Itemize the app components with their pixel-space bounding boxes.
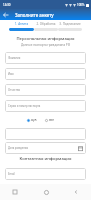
staticText: Email [8,172,15,176]
staticText: Имя [8,72,14,76]
button[interactable]: жен [44,118,56,122]
staticText: 1. Анкета [9,22,34,26]
button[interactable]: Имя [5,68,86,80]
staticText: Дата рождения [8,146,29,150]
staticText: Отчество [8,88,21,92]
button[interactable]: Email [5,168,86,180]
button[interactable]: Recent apps [7,184,23,200]
button[interactable] [5,128,86,140]
button[interactable]: Back [68,184,84,200]
staticText: 14:30 [3,3,11,7]
staticText: Серия и номер паспорта [8,104,41,108]
staticText: 2. Обработка [34,22,58,26]
staticText: Контактная информация [0,156,91,162]
button[interactable]: Фамилия [5,52,86,64]
staticText: 100% [77,3,85,7]
staticText: жен [49,118,55,122]
staticText: Данные паспорта гражданина РФ [0,43,91,47]
button[interactable]: Серия и номер паспорта [5,100,86,112]
button[interactable]: Отчество [5,84,86,96]
staticText: Фамилия [8,56,21,60]
staticText: 3. Подписание [58,22,82,26]
staticText: муж [31,118,37,122]
button[interactable]: муж [26,118,38,122]
button[interactable]: Дата рождения [5,142,86,154]
button[interactable]: Back [0,9,11,20]
staticText: Заполните анкету [15,12,54,18]
button[interactable]: Home [38,184,54,200]
staticText: Персональная информация [0,36,91,42]
